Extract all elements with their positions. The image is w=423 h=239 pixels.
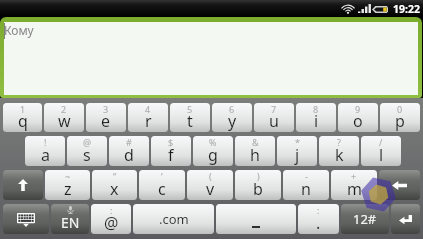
- staticText: &: [252, 136, 259, 148]
- button[interactable]: 3: [86, 103, 126, 132]
- staticText: g: [208, 144, 218, 166]
- staticText: p: [395, 110, 405, 132]
- staticText: j: [295, 144, 300, 166]
- staticText: 5: [187, 103, 193, 115]
- button[interactable]: 7: [254, 103, 294, 132]
- button[interactable]: Кому: [4, 22, 418, 95]
- other: Wi-Fi: [339, 4, 357, 14]
- other: Signal strength: [358, 4, 371, 13]
- button[interactable]: Backspace: [379, 170, 420, 200]
- button[interactable]: Input language English: [51, 204, 89, 234]
- staticText: 0: [397, 103, 403, 115]
- staticText: 6: [229, 103, 235, 115]
- staticText: v: [206, 178, 215, 200]
- staticText: m: [347, 178, 362, 200]
- button[interactable]: 4: [128, 103, 168, 132]
- button[interactable]: 0: [380, 103, 420, 132]
- button[interactable]: ): [235, 170, 281, 200]
- staticText: @: [83, 136, 92, 148]
- button[interactable]: %: [193, 136, 233, 166]
- staticText: 1: [20, 103, 26, 115]
- button[interactable]: Shift: [3, 170, 43, 200]
- staticText: w: [58, 110, 71, 132]
- staticText: Кому: [4, 22, 34, 38]
- staticText: b: [253, 178, 263, 200]
- staticText: EN: [61, 213, 80, 232]
- button[interactable]: 1: [3, 103, 42, 132]
- staticText: *: [295, 136, 300, 148]
- button[interactable]: Enter: [391, 204, 420, 234]
- staticText: ~: [65, 170, 71, 182]
- staticText: 7: [271, 103, 277, 115]
- staticText: o: [353, 110, 363, 132]
- staticText: .com: [159, 210, 189, 228]
- staticText: c: [158, 178, 166, 200]
- button[interactable]: 6: [212, 103, 252, 132]
- staticText: $: [168, 136, 174, 148]
- staticText: “: [113, 170, 117, 182]
- button[interactable]: .com: [133, 204, 214, 234]
- button[interactable]: +: [331, 170, 377, 200]
- button[interactable]: :: [298, 204, 339, 234]
- staticText: f: [168, 144, 174, 166]
- staticText: x: [110, 178, 119, 200]
- staticText: ‘: [161, 170, 163, 182]
- staticText: /: [379, 136, 383, 148]
- button[interactable]: -: [283, 170, 329, 200]
- staticText: @: [104, 212, 119, 234]
- button[interactable]: $: [151, 136, 191, 166]
- button[interactable]: (: [187, 170, 233, 200]
- button[interactable]: &: [235, 136, 275, 166]
- staticText: 8: [313, 103, 319, 115]
- button[interactable]: ‘: [139, 170, 185, 200]
- staticText: 9: [355, 103, 361, 115]
- staticText: r: [145, 110, 152, 132]
- button[interactable]: #: [109, 136, 149, 166]
- button[interactable]: @: [67, 136, 107, 166]
- staticText: d: [124, 144, 134, 166]
- staticText: .: [316, 212, 321, 234]
- staticText: s: [83, 144, 91, 166]
- staticText: -: [305, 170, 308, 182]
- staticText: a: [41, 144, 50, 166]
- button[interactable]: 9: [338, 103, 378, 132]
- staticText: (: [209, 170, 212, 182]
- button[interactable]: 2: [44, 103, 84, 132]
- button[interactable]: ~: [45, 170, 90, 200]
- staticText: +: [351, 170, 357, 182]
- staticText: u: [269, 110, 279, 132]
- staticText: 2: [61, 103, 67, 115]
- button[interactable]: :: [91, 204, 131, 234]
- button[interactable]: 12#: [341, 204, 389, 234]
- staticText: n: [301, 178, 311, 200]
- staticText: k: [335, 144, 344, 166]
- staticText: h: [250, 144, 260, 166]
- staticText: 19:22: [393, 2, 420, 16]
- button[interactable]: Switch keyboard: [3, 204, 49, 234]
- button[interactable]: /: [361, 136, 401, 166]
- button[interactable]: “: [92, 170, 137, 200]
- button[interactable]: ?: [319, 136, 359, 166]
- button[interactable]: !: [25, 136, 65, 166]
- staticText: y: [228, 110, 237, 132]
- staticText: 12#: [353, 210, 377, 228]
- staticText: i: [314, 110, 319, 132]
- button[interactable]: *: [277, 136, 317, 166]
- staticText: ): [257, 170, 260, 182]
- staticText: %: [209, 136, 217, 148]
- staticText: :: [110, 204, 113, 216]
- button[interactable]: 8: [296, 103, 336, 132]
- button[interactable]: Space: [216, 204, 296, 234]
- staticText: :: [317, 204, 320, 216]
- staticText: ?: [337, 136, 341, 148]
- staticText: 4: [145, 103, 151, 115]
- other: Battery: [372, 6, 388, 13]
- staticText: l: [379, 144, 384, 166]
- staticText: t: [187, 110, 193, 132]
- staticText: e: [101, 110, 111, 132]
- staticText: z: [64, 178, 72, 200]
- staticText: !: [44, 136, 47, 148]
- staticText: 3: [103, 103, 109, 115]
- staticText: q: [18, 110, 28, 132]
- button[interactable]: 5: [170, 103, 210, 132]
